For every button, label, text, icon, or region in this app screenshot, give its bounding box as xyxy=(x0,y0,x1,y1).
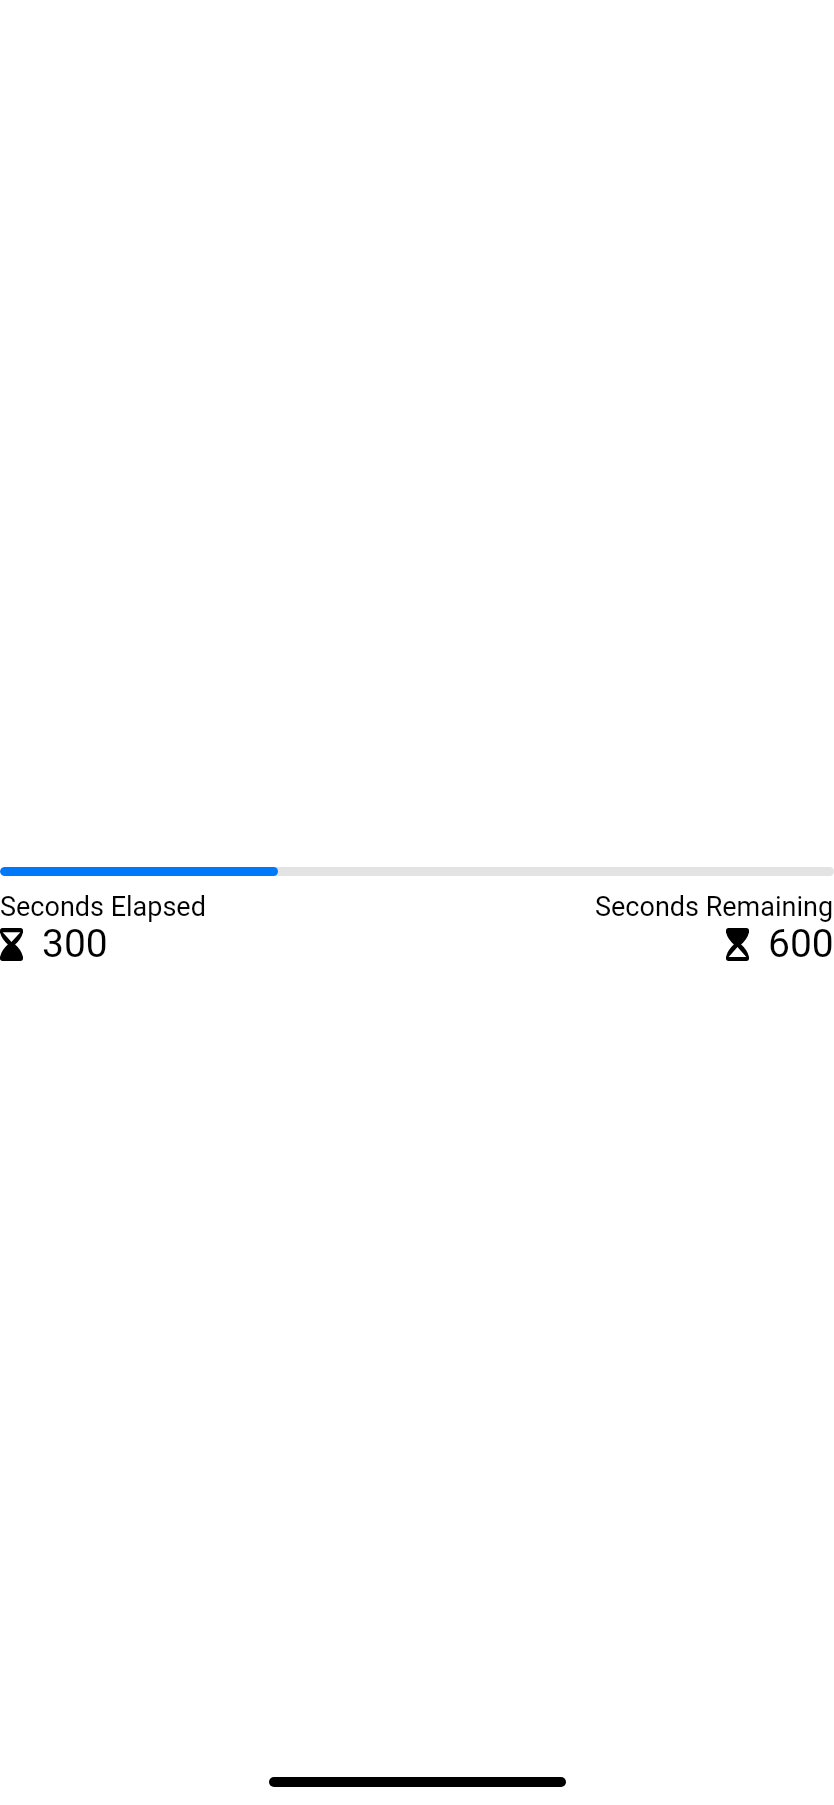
button[interactable]: Progress xyxy=(0,867,834,876)
staticText: 600 xyxy=(768,921,834,967)
staticText: Seconds Elapsed xyxy=(0,891,206,923)
other: Remaining time xyxy=(726,928,749,961)
staticText: Seconds Remaining xyxy=(595,891,834,923)
staticText: 300 xyxy=(42,921,108,967)
button[interactable]: Seconds Elapsed xyxy=(0,891,206,969)
other: Elapsed time xyxy=(0,928,23,961)
button[interactable]: Seconds Remaining xyxy=(595,891,834,969)
